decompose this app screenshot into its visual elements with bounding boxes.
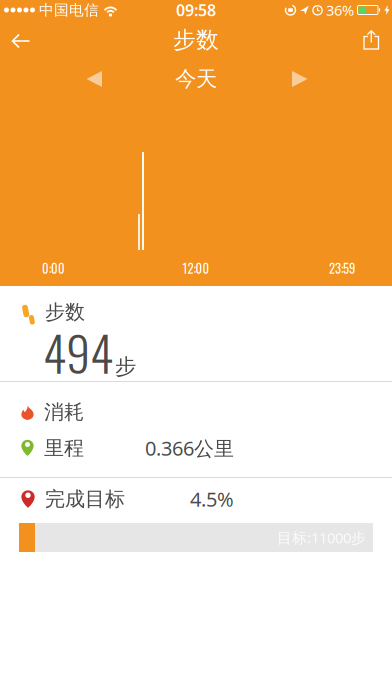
staticText: 0.366公里 <box>145 435 234 461</box>
staticText: 4.5% <box>190 486 234 512</box>
staticText: 494 <box>43 316 113 387</box>
button[interactable] <box>363 30 392 50</box>
staticText: 里程 <box>44 436 84 460</box>
staticText: 0:00 <box>42 259 65 277</box>
staticText: 消耗 <box>44 400 84 424</box>
button[interactable] <box>292 70 392 87</box>
button[interactable] <box>0 31 31 49</box>
staticText: 12:00 <box>182 259 209 277</box>
button[interactable] <box>0 70 102 87</box>
button[interactable]: 今天 <box>175 66 217 92</box>
staticText: 今天 <box>175 66 217 92</box>
staticText: 步数 <box>173 26 219 54</box>
staticText: 36% <box>326 0 354 20</box>
staticText: 中国电信 <box>39 1 99 19</box>
staticText: 步 <box>115 353 136 380</box>
staticText: 步数 <box>45 300 85 324</box>
staticText: 完成目标 <box>45 487 125 511</box>
staticText: 目标:11000步 <box>277 528 366 547</box>
staticText: 09:58 <box>176 0 216 21</box>
staticText: 23:59 <box>329 259 355 277</box>
